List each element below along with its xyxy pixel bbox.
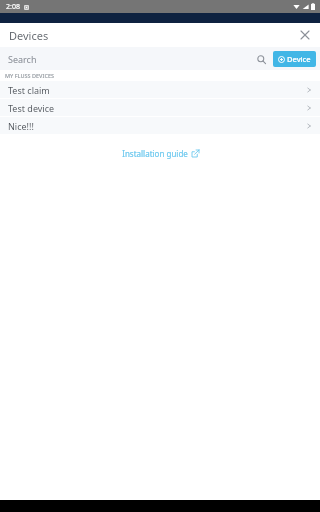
staticText: Devices bbox=[9, 28, 49, 43]
staticText: 2:08 bbox=[6, 2, 20, 12]
button[interactable]: Close bbox=[296, 26, 314, 44]
button[interactable]: Installation guide bbox=[118, 146, 203, 161]
button[interactable]: Test claim bbox=[0, 81, 320, 98]
button[interactable]: Device bbox=[273, 51, 316, 67]
button[interactable]: Search bbox=[8, 53, 37, 65]
staticText: MY FLUSS DEVICES bbox=[5, 72, 55, 79]
button[interactable]: Search bbox=[253, 51, 269, 67]
staticText: Installation guide bbox=[122, 148, 188, 159]
button[interactable]: Test device bbox=[0, 99, 320, 116]
staticText: Nice!!! bbox=[8, 120, 34, 132]
staticText: Test device bbox=[8, 102, 55, 114]
button[interactable]: Nice!!! bbox=[0, 117, 320, 134]
staticText: Test claim bbox=[8, 84, 50, 96]
staticText: Device bbox=[287, 54, 311, 64]
